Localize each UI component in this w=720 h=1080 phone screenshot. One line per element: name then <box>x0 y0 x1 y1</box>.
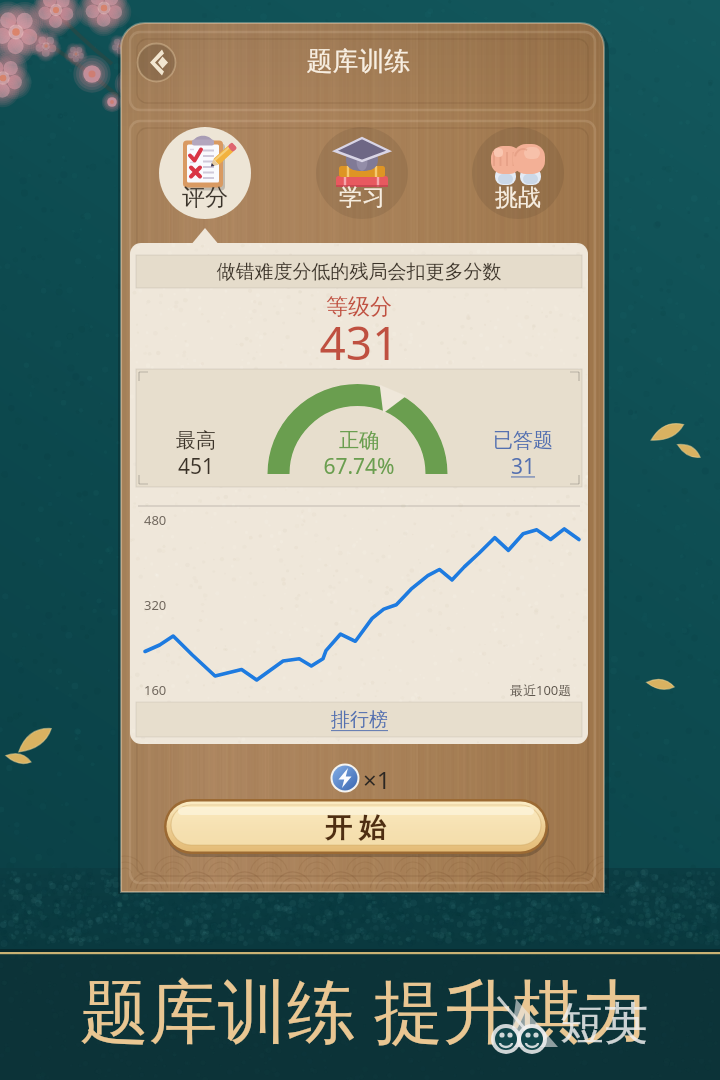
button[interactable]: 开 始 <box>164 799 548 854</box>
staticText: 320 <box>144 596 167 614</box>
staticText: 已答题 <box>463 428 583 453</box>
staticText: 学习 <box>339 183 385 212</box>
staticText: 做错难度分低的残局会扣更多分数 <box>130 260 588 284</box>
button[interactable]: 学习 <box>316 127 408 219</box>
staticText: 67.74% <box>299 452 419 481</box>
staticText: 31 <box>463 452 583 481</box>
staticText: 评分 <box>182 183 228 212</box>
staticText: 短英 <box>560 996 648 1051</box>
staticText: 最近100题 <box>510 681 572 699</box>
staticText: 最高 <box>136 428 256 453</box>
button[interactable]: Back <box>136 42 177 83</box>
staticText: 451 <box>136 452 256 481</box>
staticText: 题库训练 <box>117 45 600 78</box>
staticText: 挑战 <box>495 183 541 212</box>
staticText: 开 始 <box>325 808 387 845</box>
button[interactable]: 排行榜 <box>136 702 582 737</box>
button[interactable]: 评分 <box>159 127 251 219</box>
staticText: 480 <box>144 511 167 529</box>
staticText: 431 <box>130 311 588 374</box>
staticText: 等级分 <box>130 293 588 321</box>
staticText: 排行榜 <box>331 708 388 732</box>
staticText: 160 <box>144 681 167 699</box>
staticText: 题库训练 提升棋力 <box>80 962 650 1056</box>
button[interactable]: 挑战 <box>472 127 564 219</box>
staticText: ×1 <box>363 763 391 793</box>
staticText: 正确 <box>299 428 419 453</box>
